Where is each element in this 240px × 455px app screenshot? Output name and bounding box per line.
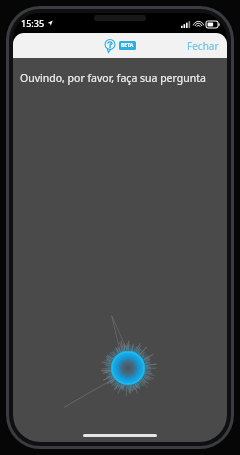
staticText: Ouvindo, por favor, faça sua pergunta: [20, 71, 206, 85]
other: Ouvindo: [80, 328, 160, 408]
staticText: 15:35: [21, 17, 45, 29]
button[interactable]: Ajuda: [104, 39, 136, 52]
staticText: Fechar: [187, 39, 219, 53]
staticText: BETA: [121, 42, 134, 49]
button[interactable]: Fechar: [179, 35, 227, 57]
other: Ajuda: [104, 39, 117, 52]
